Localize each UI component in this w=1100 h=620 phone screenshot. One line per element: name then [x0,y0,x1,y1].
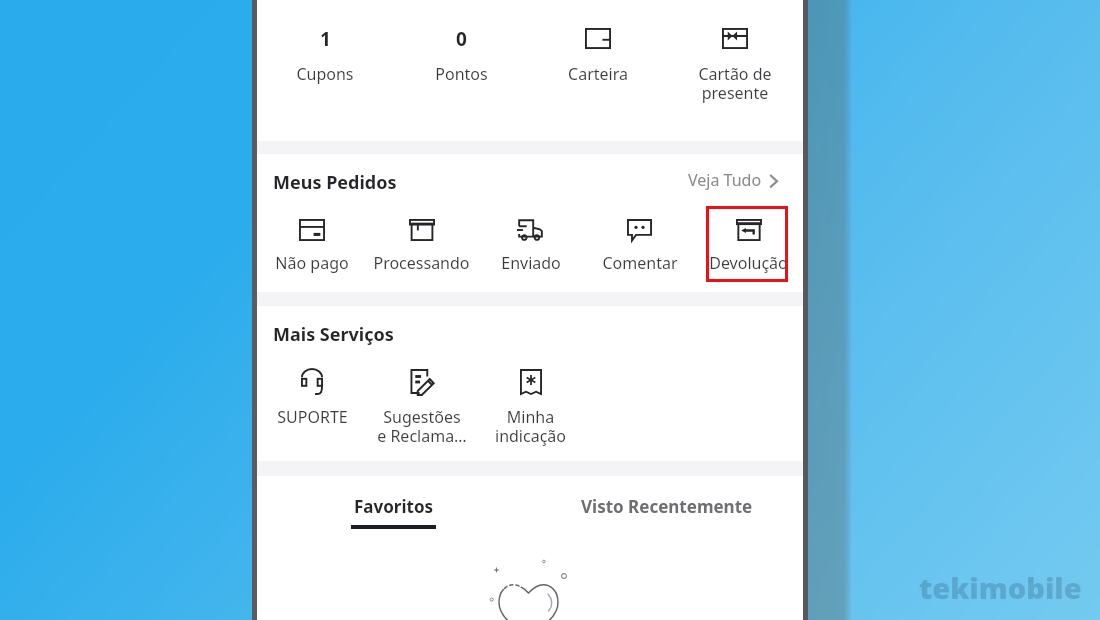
staticText: Devolução [709,252,788,274]
staticText: Comentar [602,252,678,274]
button[interactable]: Veja Tudo [688,171,779,192]
button[interactable]: Processando [367,219,476,295]
staticText: Favoritos [354,495,434,518]
staticText: Mais Serviços [273,322,394,347]
staticText: Veja Tudo [688,169,762,190]
button[interactable]: Minha indicação [476,368,585,444]
staticText: Minha indicação [495,406,566,447]
button[interactable]: Carteira [529,0,666,141]
staticText: Enviado [501,252,561,274]
staticText: Pontos [435,63,488,85]
staticText: 0 [456,26,467,52]
button[interactable]: Cartão de presente [666,0,803,141]
button[interactable]: Visto Recentemente [530,476,803,536]
button[interactable]: SUPORTE [257,368,367,444]
staticText: Cartão de presente [698,63,772,104]
staticText: 1 [320,26,331,52]
button[interactable]: Devolução [694,219,803,295]
staticText: Não pago [275,252,349,274]
staticText: tekimobile [919,568,1082,607]
staticText: Cupons [296,63,354,85]
button[interactable]: Favoritos [257,476,530,536]
button[interactable]: Não pago [257,219,367,295]
button[interactable]: Enviado [476,219,585,295]
button[interactable]: Comentar [585,219,694,295]
button[interactable]: 1 [257,0,393,141]
staticText: Meus Pedidos [273,170,397,195]
button[interactable]: Sugestões e Reclama… [367,368,476,444]
staticText: Carteira [568,63,628,85]
button[interactable]: 0 [393,0,529,141]
staticText: Visto Recentemente [581,495,753,518]
staticText: Processando [373,252,470,274]
staticText: Sugestões e Reclama… [377,406,467,447]
staticText: SUPORTE [277,406,348,428]
